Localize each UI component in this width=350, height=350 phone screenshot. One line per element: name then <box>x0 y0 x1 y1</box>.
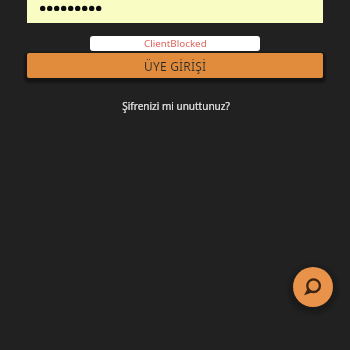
staticText: ClientBlocked <box>144 37 207 50</box>
button[interactable]: Chat support <box>293 267 333 307</box>
staticText: ÜYE GİRİŞİ <box>144 58 207 74</box>
button[interactable]: ClientBlocked <box>90 36 260 51</box>
staticText: Şifrenizi mi unuttunuz? <box>122 99 230 113</box>
button[interactable] <box>27 0 323 23</box>
button[interactable]: Şifrenizi mi unuttunuz? <box>119 97 233 115</box>
button[interactable]: ÜYE GİRİŞİ <box>27 53 323 78</box>
